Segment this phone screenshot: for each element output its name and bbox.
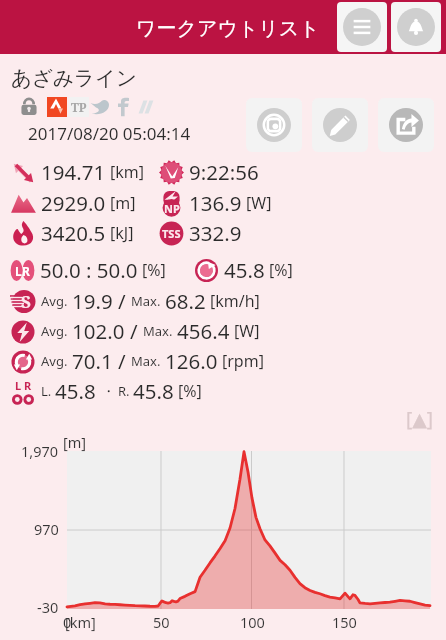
button[interactable]: Strava xyxy=(47,97,67,117)
staticText: 45.8 xyxy=(133,377,174,405)
button[interactable]: Share xyxy=(378,98,434,152)
staticText: L. xyxy=(41,382,52,400)
staticText: 136.9 xyxy=(189,189,242,217)
staticText: 456.4 xyxy=(177,317,230,345)
staticText: L xyxy=(15,263,22,279)
button[interactable]: Show on map xyxy=(246,98,302,152)
staticText: [W] xyxy=(246,192,272,214)
staticText: -30 xyxy=(37,597,59,617)
staticText: TP xyxy=(71,99,87,115)
button[interactable]: More xyxy=(135,97,155,117)
staticText: 1,970 xyxy=(21,441,59,461)
staticText: [W] xyxy=(234,320,260,342)
button[interactable]: Edit xyxy=(312,98,368,152)
staticText: 19.9 xyxy=(72,287,113,315)
staticText: 3420.5 xyxy=(41,219,106,247)
staticText: 100 xyxy=(240,612,265,632)
button[interactable]: Notifications xyxy=(391,2,441,52)
staticText: 50 xyxy=(153,612,170,632)
staticText: あざみライン xyxy=(11,65,137,91)
staticText: 45.8 xyxy=(55,377,96,405)
staticText: [km] xyxy=(65,612,96,632)
staticText: 332.9 xyxy=(189,219,242,247)
button[interactable]: [▲] xyxy=(406,406,434,432)
staticText: R xyxy=(22,263,30,279)
staticText: [m] xyxy=(63,432,87,452)
staticText: 970 xyxy=(34,519,59,539)
button[interactable]: TrainingPeaks xyxy=(69,97,89,117)
staticText: [%] xyxy=(178,380,202,402)
staticText: [%] xyxy=(142,259,166,281)
staticText: ワークアウトリスト xyxy=(136,16,320,41)
staticText: 45.8 xyxy=(224,256,265,284)
staticText: 126.0 xyxy=(165,347,218,375)
staticText: NP xyxy=(164,201,180,216)
staticText: [km] xyxy=(110,161,145,183)
staticText: 102.0 xyxy=(72,317,125,345)
staticText: TSS xyxy=(162,226,181,241)
staticText: 150 xyxy=(332,612,357,632)
staticText: 2017/08/20 05:04:14 xyxy=(28,122,191,145)
staticText: / xyxy=(118,347,126,375)
staticText: [m] xyxy=(110,192,136,214)
staticText: / xyxy=(130,317,138,345)
staticText: Max. xyxy=(143,322,173,340)
staticText: S xyxy=(21,290,31,313)
staticText: [km/h] xyxy=(210,290,260,312)
staticText: R xyxy=(24,378,32,393)
staticText: Avg. xyxy=(41,352,68,370)
staticText: / xyxy=(118,287,126,315)
button[interactable]: Facebook xyxy=(113,97,133,117)
staticText: Max. xyxy=(131,292,161,310)
staticText: 9:22:56 xyxy=(189,158,259,186)
staticText: [rpm] xyxy=(222,350,264,372)
staticText: 2929.0 xyxy=(41,189,106,217)
button[interactable]: Menu xyxy=(337,2,387,52)
staticText: 70.1 xyxy=(72,347,113,375)
staticText: 68.2 xyxy=(165,287,206,315)
staticText: Avg. xyxy=(41,292,68,310)
button[interactable]: Private xyxy=(20,96,38,117)
staticText: [%] xyxy=(269,259,293,281)
staticText: R. xyxy=(118,382,130,400)
staticText: [kJ] xyxy=(110,222,134,244)
button[interactable]: Twitter xyxy=(90,97,110,117)
staticText: 50.0 : 50.0 xyxy=(40,256,138,284)
staticText: 194.71 xyxy=(41,158,106,186)
staticText: L xyxy=(15,378,22,393)
staticText: 0 xyxy=(63,612,72,632)
staticText: Max. xyxy=(131,352,161,370)
staticText: Avg. xyxy=(41,322,68,340)
staticText: ・ xyxy=(102,383,115,399)
